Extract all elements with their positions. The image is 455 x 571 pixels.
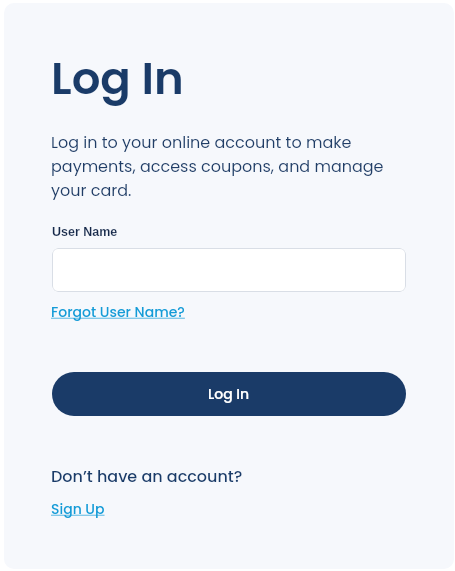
- staticText: Log In: [51, 47, 184, 110]
- staticText: User Name: [52, 225, 118, 239]
- staticText: Log In: [208, 384, 250, 404]
- staticText: Forgot User Name?: [51, 302, 185, 322]
- staticText: Log in to your online account to make pa…: [51, 131, 391, 201]
- button[interactable]: Forgot User Name?: [51, 298, 185, 326]
- staticText: Don’t have an account?: [51, 465, 243, 487]
- button[interactable]: Sign Up: [51, 495, 105, 523]
- button[interactable]: Log In: [52, 372, 406, 416]
- staticText: Sign Up: [51, 499, 105, 519]
- button[interactable]: User Name input field: [52, 248, 406, 292]
